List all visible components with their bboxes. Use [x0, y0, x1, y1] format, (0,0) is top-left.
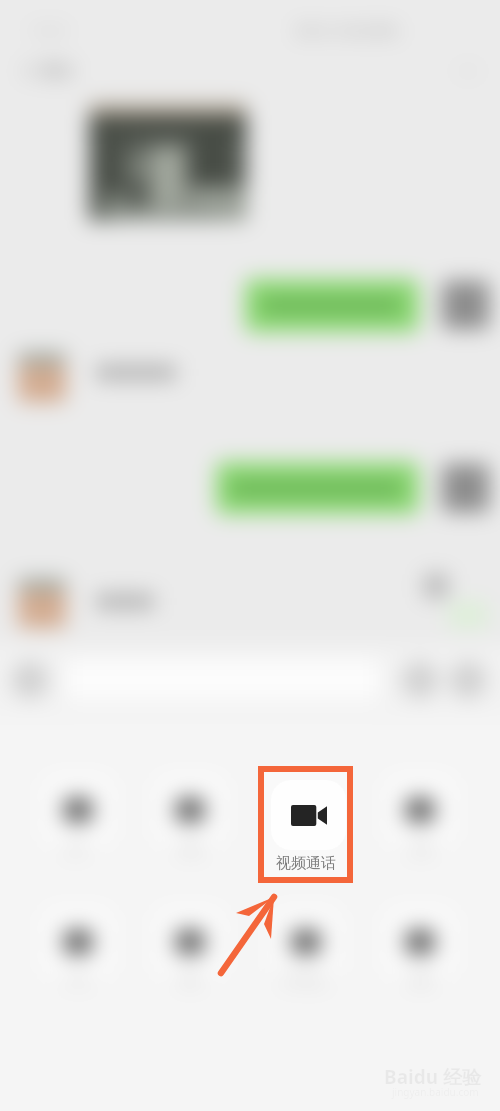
- button[interactable]: More: [450, 662, 486, 698]
- button[interactable]: 收藏: [386, 908, 454, 976]
- staticText: 视频通话: [276, 854, 336, 873]
- button[interactable]: 视频通话 Video call: [264, 772, 347, 877]
- button[interactable]: 红包: [44, 908, 112, 976]
- button[interactable]: 照片: [44, 776, 112, 844]
- staticText: Baidu 经验: [384, 1064, 481, 1090]
- button[interactable]: Emoji: [402, 662, 438, 698]
- button[interactable]: 转账: [156, 908, 224, 976]
- button[interactable]: Back to 微信: [14, 52, 84, 90]
- button[interactable]: 语音输入: [272, 908, 340, 976]
- button[interactable]: Voice input: [12, 662, 48, 698]
- button[interactable]: 视频通话: [272, 776, 340, 844]
- button[interactable]: 拍摄: [156, 776, 224, 844]
- button[interactable]: 位置: [386, 776, 454, 844]
